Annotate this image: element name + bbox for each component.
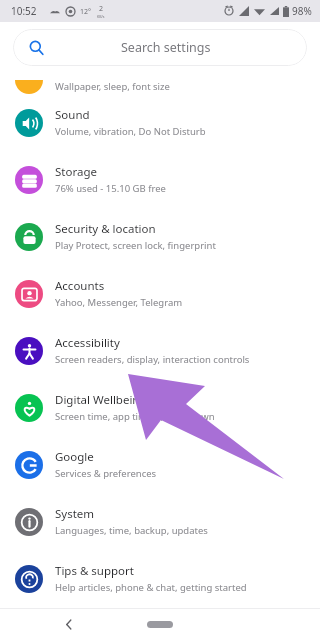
staticText: Accessibility (55, 335, 120, 351)
staticText: Screen time, app timers, wind down (55, 410, 215, 423)
button[interactable]: Home (147, 621, 173, 628)
staticText: Digital Wellbeing (55, 392, 147, 408)
staticText: Storage (55, 164, 97, 180)
staticText: Help articles, phone & chat, getting sta… (55, 581, 247, 594)
staticText: Volume, vibration, Do Not Disturb (55, 125, 206, 138)
staticText: Screen readers, display, interaction con… (55, 353, 250, 366)
staticText: 76% used - 15.10 GB free (55, 182, 166, 195)
button[interactable]: Back (58, 613, 80, 635)
button[interactable]: Storage (0, 151, 320, 208)
staticText: Languages, time, backup, updates (55, 524, 208, 537)
staticText: Play Protect, screen lock, fingerprint (55, 239, 216, 252)
staticText: Sound (55, 107, 90, 123)
staticText: Tips & support (55, 563, 134, 579)
button[interactable]: Wallpaper, sleep, font size (0, 72, 320, 94)
staticText: Accounts (55, 278, 105, 294)
staticText: KB/s (97, 14, 105, 19)
button[interactable]: Search settings (13, 29, 307, 66)
button[interactable]: Security & location (0, 208, 320, 265)
staticText: 2 (99, 4, 104, 14)
staticText: 12° (80, 7, 92, 17)
button[interactable]: Tips & support (0, 550, 320, 607)
button[interactable]: Google (0, 436, 320, 493)
button[interactable]: Accessibility (0, 322, 320, 379)
staticText: 10:52 (11, 4, 37, 18)
staticText: 98% (292, 4, 312, 18)
staticText: Services & preferences (55, 467, 157, 480)
staticText: Search settings (121, 39, 211, 56)
staticText: Wallpaper, sleep, font size (55, 80, 170, 93)
staticText: Security & location (55, 221, 156, 237)
staticText: Google (55, 449, 94, 465)
button[interactable]: Accounts (0, 265, 320, 322)
staticText: System (55, 506, 95, 522)
button[interactable]: Sound (0, 94, 320, 151)
button[interactable]: Digital Wellbeing (0, 379, 320, 436)
button[interactable]: System (0, 493, 320, 550)
staticText: Yahoo, Messenger, Telegram (55, 296, 183, 309)
